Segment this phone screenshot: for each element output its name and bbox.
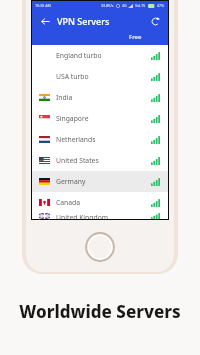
staticText: Free [129,33,142,41]
staticText: United Kingdom [56,213,109,219]
button[interactable]: India [32,87,168,108]
staticText: 10:36 AM [35,3,51,8]
button[interactable]: United States [32,150,168,171]
button[interactable]: USA turbo [32,66,168,87]
staticText: Vol.75 [135,3,146,8]
staticText: VPN Servers [57,15,110,27]
staticText: USA turbo [56,72,89,81]
button[interactable]: England turbo [32,45,168,66]
staticText: Germany [56,177,86,186]
staticText: Worldwide Servers [19,300,181,323]
button[interactable]: Singapore [32,108,168,129]
staticText: England turbo [56,51,102,60]
staticText: India [56,93,73,102]
staticText: Netherlands [56,135,96,144]
button[interactable]: United Kingdom [32,213,168,219]
staticText: 33.8K/s [101,3,114,8]
button[interactable]: Free [129,33,142,41]
button[interactable]: Canada [32,192,168,213]
button[interactable]: Back [38,14,52,28]
staticText: 4G [122,3,127,8]
button[interactable]: Germany [32,171,168,192]
button[interactable]: Netherlands [32,129,168,150]
staticText: Singapore [56,114,89,123]
staticText: United States [56,156,99,165]
staticText: 47% [157,3,165,8]
staticText: Canada [56,198,81,207]
button[interactable]: Refresh [148,14,162,28]
